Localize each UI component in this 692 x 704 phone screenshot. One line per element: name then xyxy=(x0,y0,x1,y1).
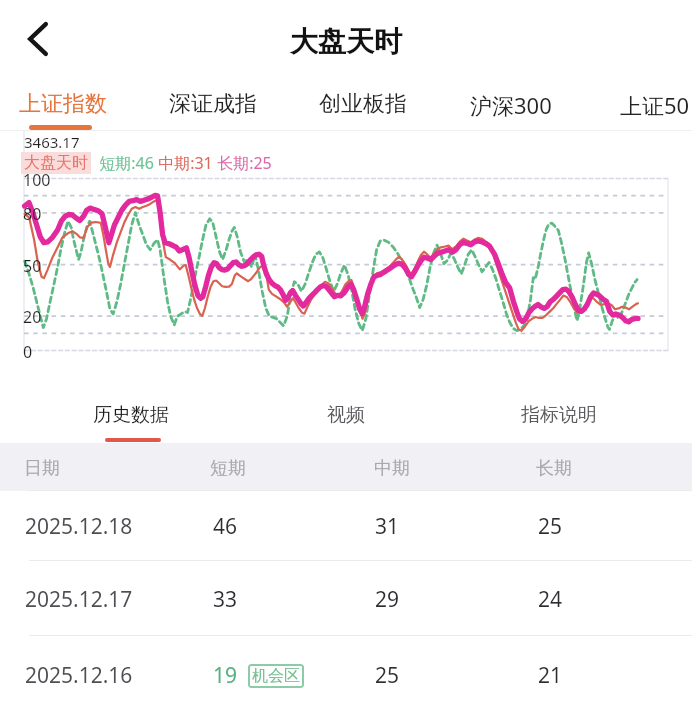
staticText: 创业板指 xyxy=(319,90,407,118)
staticText: 长期:25 xyxy=(213,152,272,174)
staticText: 长期 xyxy=(536,457,572,480)
staticText: 25 xyxy=(538,512,563,541)
button[interactable]: 2025.12.18 xyxy=(0,490,692,560)
staticText: 100 xyxy=(23,169,51,191)
button[interactable]: 历史数据 xyxy=(71,386,191,441)
staticText: 50 xyxy=(23,255,42,277)
staticText: 21 xyxy=(538,661,563,690)
staticText: 19 xyxy=(213,661,238,690)
staticText: 80 xyxy=(23,203,42,225)
staticText: 24 xyxy=(538,585,563,614)
staticText: 短期 xyxy=(210,457,246,480)
staticText: 上证指数 xyxy=(19,90,107,118)
button[interactable]: 视频 xyxy=(286,386,406,441)
staticText: 2025.12.17 xyxy=(25,585,133,614)
button[interactable]: 上证指数 xyxy=(7,78,119,125)
staticText: 2025.12.16 xyxy=(25,661,133,690)
staticText: 25 xyxy=(375,661,400,690)
staticText: 指标说明 xyxy=(521,403,597,427)
staticText: 0 xyxy=(23,341,33,363)
staticText: 中期:31 xyxy=(154,152,213,174)
staticText: 29 xyxy=(375,585,400,614)
button[interactable]: 2025.12.17 xyxy=(0,560,692,635)
staticText: 33 xyxy=(213,585,238,614)
staticText: 20 xyxy=(23,306,42,328)
staticText: 日期 xyxy=(24,457,60,480)
staticText: 大盘天时 xyxy=(24,153,88,173)
staticText: 沪深300 xyxy=(470,90,552,120)
staticText: 历史数据 xyxy=(93,403,169,427)
staticText: 31 xyxy=(375,512,400,541)
staticText: 大盘天时 xyxy=(290,24,402,59)
staticText: 3463.17 xyxy=(24,132,80,152)
staticText: 机会区 xyxy=(252,666,300,686)
button[interactable]: 2025.12.16 xyxy=(0,635,692,704)
staticText: 2025.12.18 xyxy=(25,512,133,541)
staticText: 视频 xyxy=(327,403,365,427)
button[interactable]: 沪深300 xyxy=(458,78,564,125)
staticText: 中期 xyxy=(374,457,410,480)
button[interactable]: 深证成指 xyxy=(157,78,269,125)
staticText: 深证成指 xyxy=(169,90,257,118)
button[interactable]: 指标说明 xyxy=(499,386,619,441)
button[interactable]: Back xyxy=(11,11,67,67)
button[interactable]: 创业板指 xyxy=(307,78,419,125)
staticText: 上证50 xyxy=(620,90,690,120)
staticText: 46 xyxy=(213,512,238,541)
staticText: 短期:46 xyxy=(91,152,154,174)
button[interactable]: 上证50 xyxy=(608,78,692,125)
